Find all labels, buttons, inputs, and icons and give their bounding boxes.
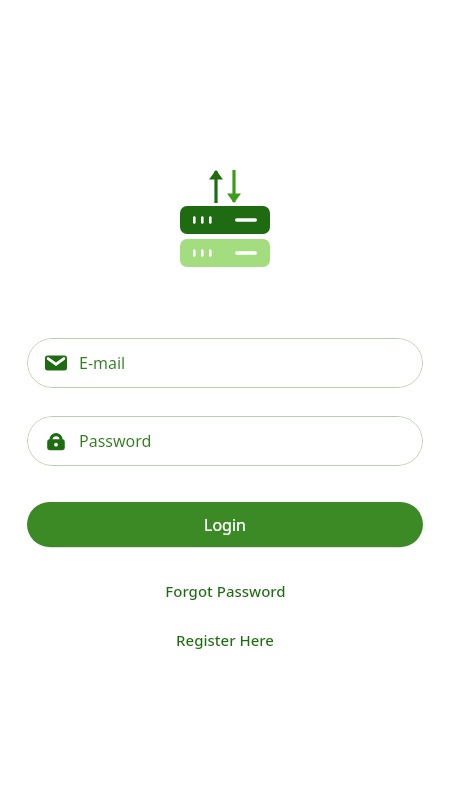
staticText: Forgot Password bbox=[165, 581, 286, 601]
button[interactable]: E-mail bbox=[27, 338, 423, 388]
staticText: E-mail bbox=[79, 352, 126, 374]
staticText: Password bbox=[79, 430, 152, 452]
button[interactable]: Login bbox=[27, 502, 423, 547]
staticText: Register Here bbox=[176, 630, 274, 650]
staticText: Login bbox=[204, 514, 246, 536]
button[interactable]: Forgot Password bbox=[155, 577, 296, 605]
other: Password bbox=[45, 430, 67, 452]
other: E-mail bbox=[45, 352, 67, 374]
button[interactable]: Password bbox=[27, 416, 423, 466]
button[interactable]: Register Here bbox=[166, 626, 284, 654]
